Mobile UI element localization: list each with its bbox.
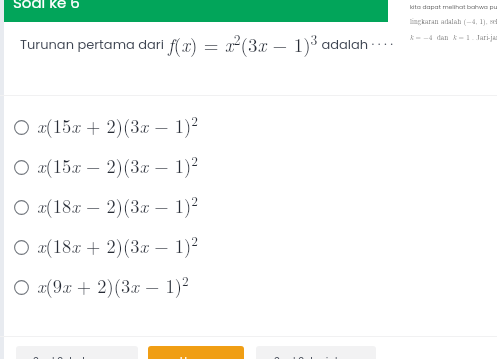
button[interactable]: x(15x − 2)(3x − 1)2 [0,147,497,187]
staticText: Soal Sebelumnya [33,354,121,359]
staticText: x(18x − 2)(3x − 1)2 [37,191,198,218]
button[interactable]: Hapus [148,346,244,359]
staticText: k = −4 dan k = 1 . Jari-jari ling [410,32,497,42]
staticText: Soal ke 6 [13,0,80,13]
staticText: x(18x + 2)(3x − 1)2 [37,231,198,258]
button[interactable]: Soal Sebelumnya [16,346,138,359]
button[interactable]: Soal Selanjutnya [256,346,376,359]
staticText: Hapus [180,354,213,359]
staticText: kita dapat melihat bahwa pusat [410,3,497,11]
staticText: f(x) = x2(3x − 1)3 [168,30,318,58]
staticText: adalah · · · · [318,35,394,53]
staticText: x(9x + 2)(3x − 1)2 [37,271,189,298]
staticText: x(15x − 2)(3x − 1)2 [37,151,198,178]
button[interactable]: x(18x + 2)(3x − 1)2 [0,227,497,267]
staticText: Turunan pertama dari [20,35,168,53]
staticText: lingkaran adalah (−4, 1), sehing [410,16,497,26]
staticText: Soal Selanjutnya [274,354,358,359]
button[interactable]: x(9x + 2)(3x − 1)2 [0,267,497,307]
button[interactable]: x(15x + 2)(3x − 1)2 [0,107,497,147]
button[interactable]: x(18x − 2)(3x − 1)2 [0,187,497,227]
staticText: x(15x + 2)(3x − 1)2 [37,111,198,138]
